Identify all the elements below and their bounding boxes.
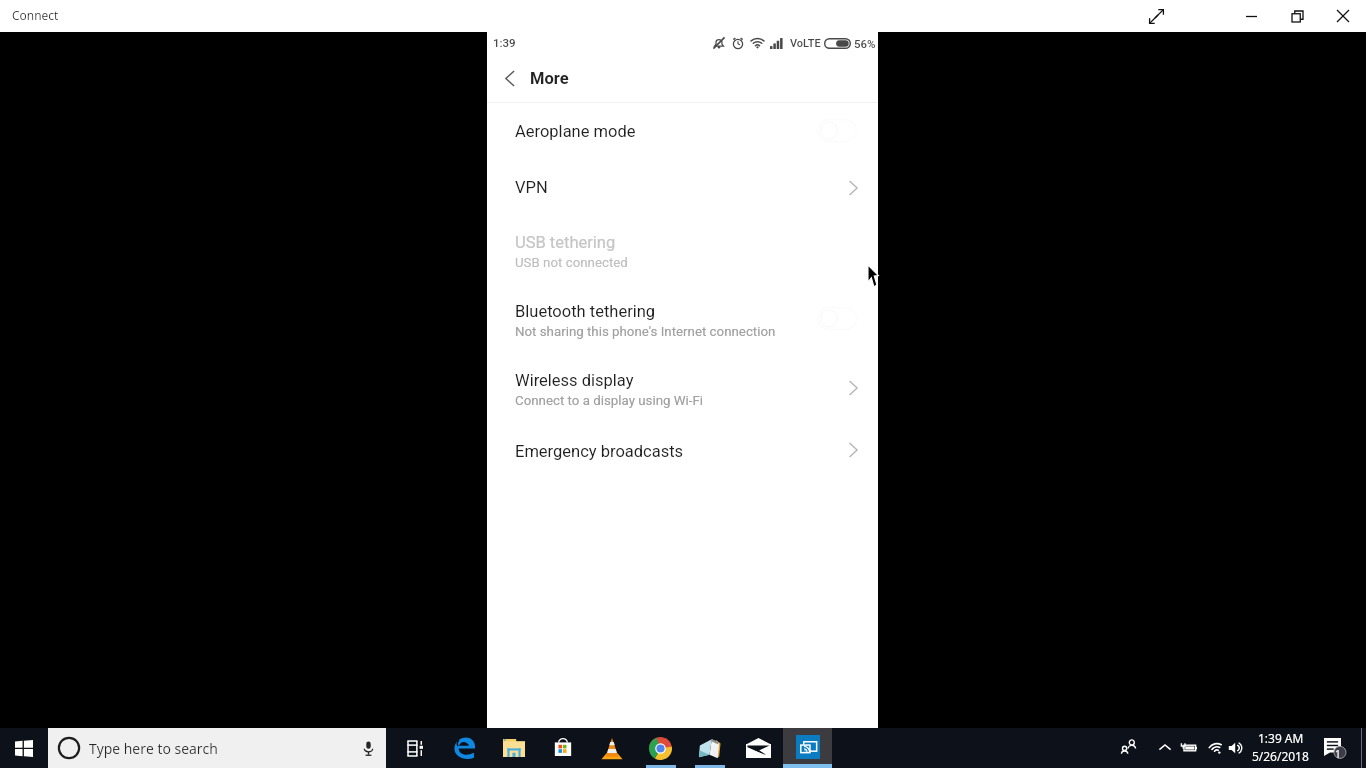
button[interactable]: Full screen xyxy=(1133,0,1179,32)
staticText: 1 xyxy=(1335,747,1341,761)
button[interactable]: Emergency broadcasts xyxy=(487,423,878,479)
button[interactable]: People xyxy=(1116,728,1142,768)
staticText: Connect to a display using Wi-Fi xyxy=(515,393,704,409)
staticText: More xyxy=(530,69,569,88)
button[interactable]: Show desktop xyxy=(1357,728,1366,768)
button[interactable]: Notepad xyxy=(685,728,734,768)
button[interactable]: Type here to search xyxy=(48,728,386,768)
button[interactable]: Microsoft Edge xyxy=(440,728,489,768)
button[interactable]: Network xyxy=(1207,728,1233,768)
staticText: VoLTE xyxy=(790,37,821,50)
staticText: USB tethering xyxy=(515,233,616,252)
staticText: Type here to search xyxy=(89,739,218,758)
staticText: 5/26/2018 xyxy=(1252,748,1309,764)
button[interactable]: Minimize xyxy=(1228,0,1274,32)
button[interactable]: 1:39 AM xyxy=(1248,728,1313,768)
button[interactable]: Close xyxy=(1320,0,1366,32)
button[interactable]: Notifications xyxy=(1321,728,1349,768)
button[interactable]: File Explorer xyxy=(489,728,538,768)
staticText: Emergency broadcasts xyxy=(515,442,684,461)
button[interactable]: VPN xyxy=(487,159,878,215)
button[interactable]: Microsoft Store xyxy=(538,728,587,768)
button[interactable]: Mail xyxy=(734,728,783,768)
staticText: Aeroplane mode xyxy=(515,122,636,141)
staticText: Not sharing this phone's Internet connec… xyxy=(515,324,776,340)
button[interactable]: Restore xyxy=(1274,0,1320,32)
staticText: 1:39 xyxy=(493,36,516,49)
button[interactable]: VLC media player xyxy=(587,728,636,768)
button[interactable]: Volume xyxy=(1223,728,1249,768)
button[interactable]: Aeroplane mode xyxy=(487,103,878,159)
button[interactable]: Show hidden icons xyxy=(1152,728,1178,768)
staticText: USB not connected xyxy=(515,255,628,271)
staticText: Bluetooth tethering xyxy=(515,302,656,321)
staticText: VPN xyxy=(515,178,548,197)
button[interactable]: USB tethering xyxy=(487,215,878,285)
staticText: 56% xyxy=(854,37,876,50)
button[interactable]: Start xyxy=(0,728,48,768)
button[interactable]: Wireless display xyxy=(487,354,878,423)
staticText: Connect xyxy=(12,7,59,23)
button[interactable]: Google Chrome xyxy=(636,728,685,768)
button[interactable]: Back xyxy=(494,64,530,100)
staticText: Wireless display xyxy=(515,371,634,390)
staticText: 1:39 AM xyxy=(1258,730,1304,746)
button[interactable]: Bluetooth tethering xyxy=(487,285,878,354)
button[interactable]: Task view xyxy=(391,728,440,768)
button[interactable]: Battery xyxy=(1176,728,1202,768)
button[interactable]: Connect xyxy=(783,728,832,768)
